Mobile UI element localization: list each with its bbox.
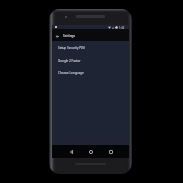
button[interactable]: Home: [85, 145, 97, 158]
button[interactable]: Back: [52, 31, 63, 41]
button[interactable]: Google 2 Factor: [52, 54, 129, 67]
button[interactable]: Back: [65, 145, 77, 158]
button[interactable]: Recents: [105, 145, 117, 158]
staticText: Settings: [63, 34, 76, 38]
staticText: Setup Security PIN: [58, 46, 85, 50]
staticText: 1:46: [119, 26, 125, 29]
button[interactable]: Choose Language: [52, 66, 129, 79]
button[interactable]: Setup Security PIN: [52, 41, 129, 54]
staticText: Google 2 Factor: [58, 59, 81, 63]
staticText: Choose Language: [58, 71, 84, 75]
